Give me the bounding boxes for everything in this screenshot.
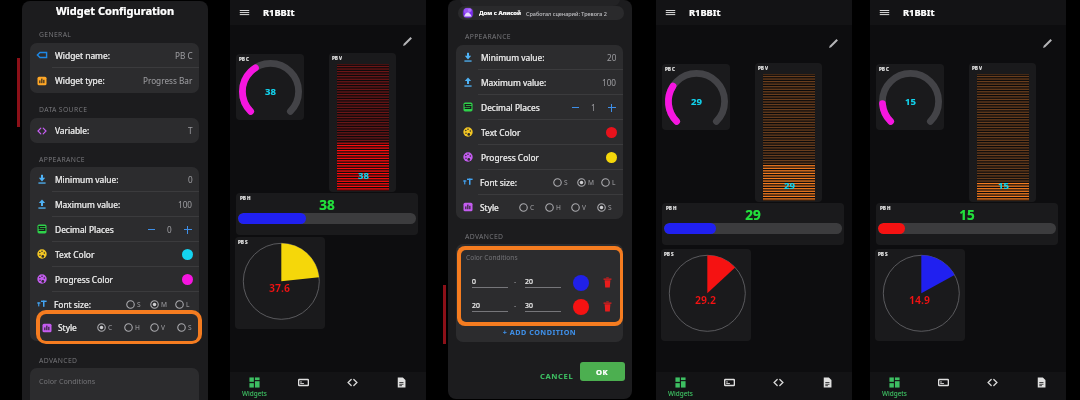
button[interactable]: Delete condition bbox=[602, 301, 613, 312]
button[interactable]: Widgets tab bbox=[870, 372, 919, 400]
button[interactable]: PB S bbox=[661, 249, 751, 341]
button[interactable]: + ADD CONDITION bbox=[456, 327, 623, 342]
staticText: DATA SOURCE bbox=[39, 105, 88, 114]
button[interactable]: Font size: bbox=[30, 292, 199, 316]
button[interactable]: S bbox=[597, 203, 612, 212]
button[interactable]: S bbox=[176, 325, 191, 334]
button[interactable]: Variable: bbox=[30, 118, 199, 143]
staticText: Widgets bbox=[882, 389, 907, 398]
staticText: 15 bbox=[905, 95, 916, 108]
button[interactable]: CANCEL bbox=[536, 367, 578, 385]
button[interactable]: S bbox=[553, 178, 568, 187]
button[interactable]: PB C bbox=[662, 64, 730, 130]
staticText: Progress Bar bbox=[143, 75, 193, 86]
button[interactable]: Logs tab bbox=[803, 372, 852, 400]
button[interactable]: V bbox=[149, 325, 164, 334]
button[interactable]: Console tab bbox=[279, 372, 328, 400]
staticText: PB V bbox=[332, 55, 343, 61]
staticText: Font size: bbox=[480, 177, 517, 188]
button[interactable]: Widget name: bbox=[30, 43, 199, 67]
button[interactable]: PB S bbox=[875, 249, 965, 341]
button[interactable]: Font size: bbox=[456, 170, 623, 194]
staticText: 15 bbox=[998, 179, 1009, 192]
button[interactable]: Minimum value: bbox=[456, 45, 623, 69]
button[interactable]: Progress Color bbox=[30, 267, 199, 291]
staticText: 100 bbox=[602, 77, 617, 88]
button[interactable]: Progress Color bbox=[456, 145, 623, 169]
button[interactable]: Console tab bbox=[919, 372, 968, 400]
button[interactable]: M bbox=[577, 178, 594, 187]
button[interactable]: L bbox=[601, 178, 616, 187]
staticText: PB C bbox=[879, 66, 890, 72]
button[interactable]: C bbox=[519, 203, 535, 212]
staticText: Widgets bbox=[242, 389, 267, 398]
button[interactable]: Logs tab bbox=[1017, 372, 1066, 400]
button[interactable]: Open navigation drawer bbox=[665, 7, 676, 18]
button[interactable]: Color Conditions bbox=[30, 368, 199, 400]
button[interactable]: Widget type: bbox=[30, 68, 199, 93]
staticText: - bbox=[514, 277, 517, 286]
staticText: 20 bbox=[607, 52, 617, 63]
button[interactable]: Open navigation drawer bbox=[239, 7, 250, 18]
button[interactable]: PB V bbox=[969, 63, 1036, 202]
staticText: Widget type: bbox=[55, 75, 105, 86]
staticText: PB V bbox=[758, 65, 769, 71]
staticText: 1 bbox=[591, 102, 596, 113]
button[interactable]: S bbox=[177, 323, 192, 332]
button[interactable]: Widgets tab bbox=[656, 372, 705, 400]
button[interactable]: PB V bbox=[755, 63, 822, 202]
button[interactable]: Increase bbox=[606, 102, 617, 113]
button[interactable]: Console tab bbox=[705, 372, 754, 400]
button[interactable]: Style bbox=[40, 314, 198, 341]
button[interactable]: PB S bbox=[235, 237, 325, 329]
button[interactable]: Code tab bbox=[328, 372, 377, 400]
button[interactable]: PB V bbox=[329, 53, 396, 192]
button[interactable] bbox=[573, 275, 589, 291]
button[interactable]: Code tab bbox=[968, 372, 1017, 400]
staticText: Style bbox=[54, 324, 73, 335]
button[interactable]: H bbox=[123, 325, 139, 334]
button[interactable]: Style bbox=[456, 195, 623, 219]
button[interactable]: V bbox=[571, 203, 586, 212]
button[interactable]: Text Color bbox=[30, 242, 199, 266]
button[interactable]: S bbox=[126, 300, 141, 309]
button[interactable]: C bbox=[97, 323, 113, 332]
button[interactable]: Minimum value: bbox=[30, 167, 199, 191]
button[interactable]: Delete condition bbox=[602, 277, 613, 288]
button[interactable]: PB C bbox=[236, 54, 304, 120]
button[interactable]: Maximum value: bbox=[30, 192, 199, 216]
button[interactable]: OK bbox=[580, 362, 625, 381]
button[interactable]: Increase bbox=[182, 224, 193, 235]
button[interactable]: PB C bbox=[876, 64, 944, 130]
button[interactable]: Decrease bbox=[146, 224, 157, 235]
button[interactable]: PB H bbox=[236, 193, 418, 235]
button[interactable]: Maximum value: bbox=[456, 70, 623, 94]
button[interactable]: Edit widgets bbox=[827, 37, 840, 50]
staticText: PB C bbox=[665, 66, 676, 72]
button[interactable]: Decrease bbox=[570, 102, 581, 113]
button[interactable]: Widgets tab bbox=[230, 372, 279, 400]
button[interactable]: Logs tab bbox=[377, 372, 426, 400]
button[interactable]: Edit widgets bbox=[1041, 37, 1054, 50]
staticText: ADVANCED bbox=[39, 356, 78, 365]
button[interactable]: C bbox=[96, 325, 112, 334]
button[interactable]: Style bbox=[30, 317, 199, 341]
button[interactable]: PB H bbox=[876, 203, 1058, 245]
button[interactable]: V bbox=[150, 323, 165, 332]
button[interactable]: H bbox=[124, 323, 140, 332]
button[interactable]: Open navigation drawer bbox=[879, 7, 890, 18]
button[interactable]: Decimal Places bbox=[30, 217, 199, 241]
button[interactable]: Decimal Places bbox=[456, 95, 623, 119]
staticText: 37.6 bbox=[269, 281, 290, 295]
button[interactable]: Text Color bbox=[456, 120, 623, 144]
button[interactable]: M bbox=[150, 300, 167, 309]
button[interactable]: PB H bbox=[662, 203, 844, 245]
button[interactable]: L bbox=[175, 300, 190, 309]
button[interactable]: H bbox=[545, 203, 561, 212]
staticText: C bbox=[107, 325, 112, 334]
staticText: S bbox=[564, 178, 568, 187]
button[interactable]: Code tab bbox=[754, 372, 803, 400]
button[interactable]: Edit widgets bbox=[401, 35, 414, 48]
button[interactable] bbox=[573, 299, 589, 315]
button[interactable]: Дом с Алисой bbox=[458, 6, 624, 20]
